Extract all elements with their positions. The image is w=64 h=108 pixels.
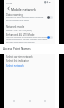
staticText: Connect to data services when roaming [6,16,44,19]
staticText: Mobile network [11,7,36,11]
button[interactable]: Switch on [47,36,53,39]
staticText: Select carrier network [6,55,33,59]
staticText: Select network [6,64,24,68]
staticText: Enhanced 4G LTE Mode [6,33,35,37]
staticText: Network mode [6,25,25,29]
staticText: Select list indicator [6,59,29,63]
staticText: Global / LTE / 3G / 2G (auto) [6,29,32,32]
button[interactable]: Data roaming [4,12,55,22]
button[interactable]: Select list indicator [4,59,55,67]
staticText: 12:30 [6,1,13,4]
staticText: Use LTE services to improve voice and ot… [6,36,48,39]
staticText: for data used with this feature. [6,41,35,44]
staticText: Access Point Names [3,47,31,51]
button[interactable]: Switch off [47,16,53,19]
button[interactable]: Enhanced 4G LTE Mode [4,33,55,44]
button[interactable]: Network mode [4,24,55,33]
staticText: Extra charges may apply [6,19,29,22]
button[interactable]: Recents [40,97,50,105]
button[interactable]: Back [9,97,19,105]
staticText: communications. Carrier charges may appl… [6,38,48,41]
button[interactable]: Home [25,97,35,105]
button[interactable]: Back [5,5,12,12]
staticText: Data roaming [6,13,23,17]
staticText: ⬤ ▮ ▰ [44,1,51,4]
